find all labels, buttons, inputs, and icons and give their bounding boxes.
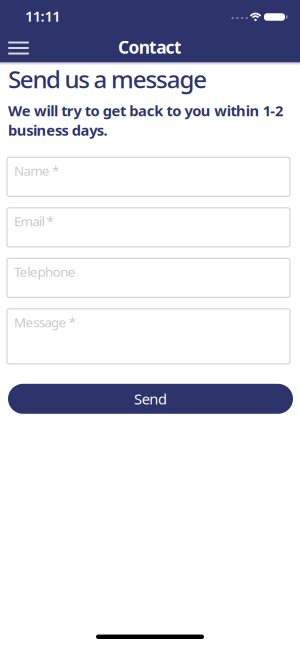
staticText: Contact [118, 35, 182, 58]
button[interactable]: Telephone [7, 258, 290, 297]
staticText: Message * [14, 313, 76, 331]
staticText: Telephone [14, 263, 76, 280]
staticText: We will try to get back to you within 1-… [8, 101, 283, 140]
staticText: Send [134, 389, 167, 409]
button[interactable]: Menu [0, 40, 29, 53]
button[interactable]: Email * [7, 208, 290, 247]
staticText: Name * [14, 162, 59, 179]
staticText: 11:11 [25, 6, 60, 26]
button[interactable]: Message * [7, 309, 290, 364]
button[interactable]: Send [8, 384, 293, 414]
button[interactable]: Name * [7, 157, 290, 196]
staticText: Email * [14, 212, 54, 230]
staticText: Send us a message [8, 63, 207, 95]
